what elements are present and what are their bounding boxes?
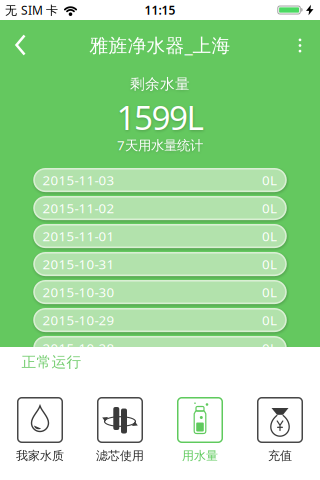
staticText: 滤芯使用 [96,448,144,463]
staticText: 我家水质 [16,448,64,463]
staticText: 2015-10-30 [42,283,114,301]
button[interactable]: More [280,20,320,64]
staticText: 剩余水量 [130,75,190,93]
staticText: 1599L [116,95,203,139]
staticText: 0L [262,339,277,357]
button[interactable]: 用水量 [160,397,240,463]
staticText: 0L [262,283,277,301]
staticText: 充值 [268,448,292,463]
staticText: 雅旌净水器_上海 [89,33,230,57]
staticText: 0L [262,311,277,329]
staticText: 0L [262,255,277,273]
staticText: 2015-10-28 [42,339,114,357]
button[interactable]: 我家水质 [0,397,80,463]
staticText: 0L [262,171,277,189]
staticText: 11:15 [144,2,175,18]
staticText: 0L [262,199,277,217]
staticText: 2015-10-31 [42,255,114,273]
staticText: 用水量 [182,448,218,463]
button[interactable]: 滤芯使用 [80,397,160,463]
staticText: 0L [262,227,277,245]
button[interactable]: 充值 [240,397,320,463]
staticText: 7天用水量统计 [117,136,203,154]
staticText: 2015-10-29 [42,311,114,329]
button[interactable]: Back [0,20,44,64]
staticText: 无 SIM 卡 [5,2,58,18]
staticText: 2015-11-02 [42,199,114,217]
staticText: 2015-11-03 [42,171,114,189]
staticText: 正常运行 [21,353,81,371]
staticText: 2015-11-01 [42,227,114,245]
